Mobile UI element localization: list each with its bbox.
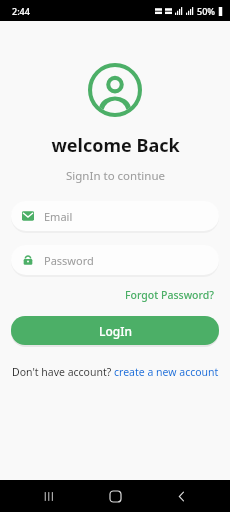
button[interactable]: LogIn (11, 316, 219, 345)
other: Email (22, 210, 34, 222)
staticText: 2:44 (12, 5, 30, 17)
staticText: Password (44, 253, 94, 268)
button[interactable]: Email (11, 201, 219, 231)
button[interactable]: Back (164, 480, 198, 512)
staticText: 50% (197, 5, 215, 17)
button[interactable]: Password (11, 245, 219, 275)
staticText: SignIn to continue (66, 168, 165, 184)
staticText: LogIn (99, 323, 132, 339)
staticText: Email (44, 209, 73, 224)
staticText: Don't have account? create a new account (12, 365, 219, 379)
button[interactable]: Forgot Password? (122, 286, 217, 304)
button[interactable]: Home (98, 480, 132, 512)
staticText: welcome Back (51, 133, 180, 158)
button[interactable]: Don't have account? create a new account (0, 363, 230, 381)
staticText: Forgot Password? (125, 288, 214, 302)
other: Password (22, 254, 34, 266)
button[interactable]: Recents (32, 480, 66, 512)
